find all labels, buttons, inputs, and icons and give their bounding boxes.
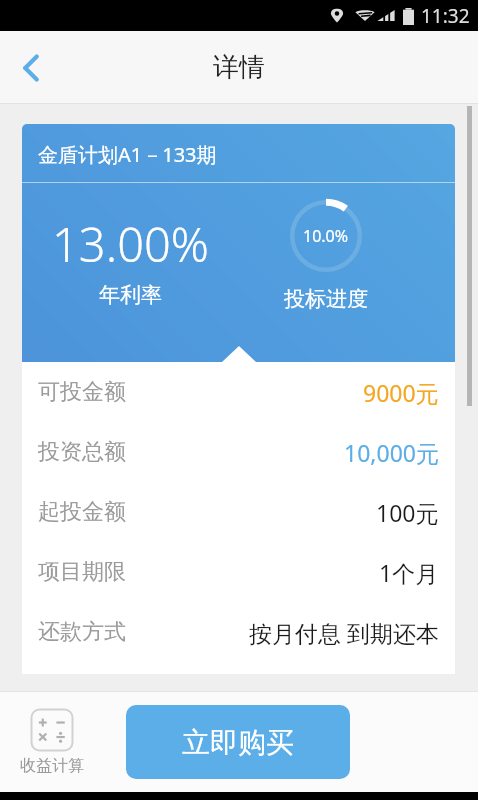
button[interactable]: 还款方式 [22,602,455,662]
staticText: 起投金额 [38,498,126,526]
staticText: 年利率 [99,282,162,308]
staticText: 100元 [376,497,439,528]
staticText: 10,000元 [344,437,439,468]
staticText: 10.0% [303,225,349,247]
button[interactable]: Back [0,37,62,99]
staticText: 投标进度 [276,286,376,312]
staticText: 按月付息 到期还本 [249,617,439,648]
staticText: 项目期限 [38,558,126,586]
staticText: 1个月 [379,557,439,588]
button[interactable]: 可投金额 [22,362,455,422]
button[interactable]: 收益计算 [14,704,90,780]
staticText: 投资总额 [38,438,126,466]
staticText: 收益计算 [20,756,84,776]
button[interactable]: 立即购买 [126,705,350,779]
staticText: 11:32 [421,3,470,29]
button[interactable]: 起投金额 [22,482,455,542]
staticText: 还款方式 [38,618,126,646]
button[interactable]: 投资总额 [22,422,455,482]
staticText: 详情 [213,51,265,84]
staticText: 立即购买 [182,725,294,760]
button[interactable]: 项目期限 [22,542,455,602]
staticText: 13.00% [52,212,209,276]
staticText: 可投金额 [38,378,126,406]
staticText: 9000元 [363,377,439,408]
staticText: 金盾计划A1－133期 [38,141,217,168]
